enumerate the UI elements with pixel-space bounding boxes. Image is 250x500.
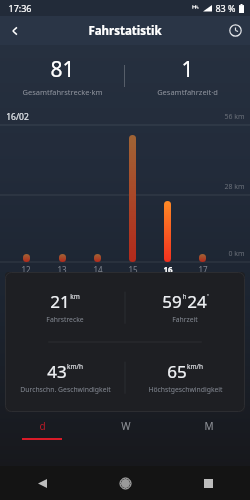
staticText: Durchschn. Geschwindigkeit: [20, 385, 111, 394]
staticText: 1: [181, 55, 194, 84]
button[interactable]: 21: [5, 272, 125, 342]
button[interactable]: History: [221, 16, 250, 45]
staticText: h: [182, 292, 187, 301]
button[interactable]: Back: [27, 468, 57, 498]
staticText: Fahrstrecke: [46, 315, 84, 324]
staticText: 43: [47, 360, 67, 383]
staticText: 0 km: [228, 249, 245, 259]
staticText: 13: [57, 264, 67, 275]
staticText: Gesamtfahrzeit·d: [157, 87, 218, 97]
staticText: 28 km: [224, 182, 245, 192]
staticText: 81: [50, 55, 75, 84]
staticText: 83 %: [215, 2, 236, 14]
staticText: 59: [162, 290, 182, 313]
button[interactable]: Back: [0, 16, 29, 45]
staticText: 56 km: [224, 112, 245, 122]
button[interactable]: 43: [5, 342, 125, 412]
staticText: ': [207, 292, 209, 301]
button[interactable]: W: [84, 412, 167, 446]
button[interactable]: Recents: [193, 468, 223, 498]
button[interactable]: Home: [110, 468, 140, 498]
staticText: Fahrzeit: [172, 315, 198, 324]
staticText: d: [39, 419, 46, 433]
staticText: Gesamtfahrstrecke·km: [22, 87, 103, 97]
staticText: 17:36: [8, 2, 32, 14]
button[interactable]: d: [0, 412, 84, 446]
staticText: W: [121, 419, 131, 433]
button[interactable]: 81: [0, 45, 124, 107]
staticText: 21: [50, 290, 70, 313]
staticText: km: [70, 292, 80, 301]
staticText: 17: [198, 264, 208, 275]
button[interactable]: 65: [125, 342, 245, 412]
staticText: 14: [93, 264, 103, 275]
staticText: M: [204, 419, 214, 433]
button[interactable]: 59: [125, 272, 245, 342]
staticText: km/h: [67, 362, 83, 371]
staticText: Fahrstatistik: [88, 23, 162, 39]
staticText: 16/02: [6, 111, 29, 123]
staticText: km/h: [187, 362, 203, 371]
staticText: 65: [167, 360, 187, 383]
staticText: 24: [187, 290, 207, 313]
staticText: Höchstgeschwindigkeit: [148, 385, 223, 394]
staticText: 15: [128, 264, 138, 275]
button[interactable]: M: [167, 412, 250, 446]
button[interactable]: 1: [125, 45, 250, 107]
staticText: 12: [21, 264, 31, 275]
staticText: 16: [163, 264, 173, 275]
